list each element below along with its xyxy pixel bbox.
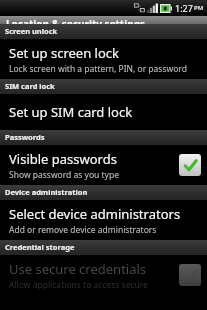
staticText: Use secure credentials (9, 260, 147, 278)
staticText: SIM card lock (5, 81, 55, 91)
staticText: Add or remove device administrators (9, 224, 157, 236)
staticText: Passwords (5, 132, 45, 142)
other: Enabled checkbox (179, 154, 201, 176)
staticText: Allow applications to access secure (9, 279, 148, 291)
button[interactable]: Select device administrators (0, 200, 207, 240)
staticText: Set up screen lock (9, 44, 120, 62)
staticText: Location & security settings (6, 17, 146, 31)
other: Disabled checkbox (179, 264, 201, 286)
button[interactable]: Set up SIM card lock (0, 94, 207, 130)
staticText: Screen unlock (5, 26, 58, 36)
staticText: Set up SIM card lock (9, 103, 133, 121)
staticText: Device administration (5, 187, 88, 197)
staticText: Show password as you type (9, 169, 119, 181)
staticText: Credential storage (5, 242, 75, 252)
button[interactable]: Set up screen lock (0, 39, 207, 79)
button[interactable]: Visible passwords (0, 145, 207, 185)
staticText: 1:27 (175, 2, 193, 14)
staticText: Select device administrators (9, 205, 181, 223)
button[interactable]: Use secure credentials (0, 255, 207, 295)
staticText: Lock screen with a pattern, PIN, or pass… (9, 63, 187, 75)
staticText: Visible passwords (9, 150, 117, 168)
staticText: PM (194, 4, 204, 12)
